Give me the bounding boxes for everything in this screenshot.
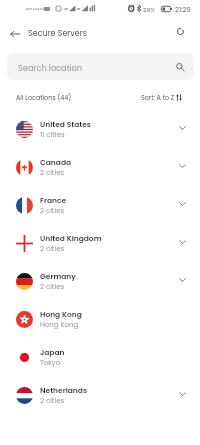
button[interactable]: Search location <box>7 53 194 80</box>
button[interactable]: United Kingdom <box>0 224 200 262</box>
button[interactable]: Japan <box>0 338 200 376</box>
staticText: MY MAXIS <box>26 6 47 12</box>
button[interactable]: United States <box>0 110 200 148</box>
staticText: Netherlands <box>40 385 87 395</box>
button[interactable]: Netherlands <box>0 376 200 414</box>
staticText: Hong Kong <box>40 309 82 319</box>
staticText: 2 cities <box>40 168 65 178</box>
staticText: Germany <box>40 271 76 281</box>
staticText: Canada <box>40 157 72 167</box>
staticText: Sort: A to Z <box>141 93 175 102</box>
staticText: 29% <box>143 6 155 14</box>
staticText: 2 cities <box>40 282 65 292</box>
staticText: Japan <box>40 347 65 357</box>
button[interactable]: Hong Kong <box>0 300 200 338</box>
staticText: 2 cities <box>40 244 65 254</box>
staticText: France <box>40 195 67 205</box>
staticText: Secure Servers <box>28 28 87 39</box>
button[interactable]: Germany <box>0 262 200 300</box>
button[interactable]: Canada <box>0 148 200 186</box>
staticText: United States <box>40 119 91 129</box>
staticText: 11 cities <box>40 130 65 140</box>
staticText: Search location <box>18 62 83 73</box>
staticText: 21:29 <box>175 5 191 15</box>
button[interactable]: All Locations (44) <box>16 93 72 102</box>
staticText: Tokyo <box>40 358 61 368</box>
button[interactable]: Sort: A to Z <box>141 93 182 102</box>
staticText: United Kingdom <box>40 233 102 243</box>
button[interactable]: Refresh <box>170 21 191 42</box>
button[interactable]: Back <box>4 23 25 44</box>
staticText: 2 cities <box>40 396 65 406</box>
button[interactable]: France <box>0 186 200 224</box>
staticText: 2 cities <box>40 206 65 216</box>
staticText: Hong Kong <box>40 320 79 330</box>
